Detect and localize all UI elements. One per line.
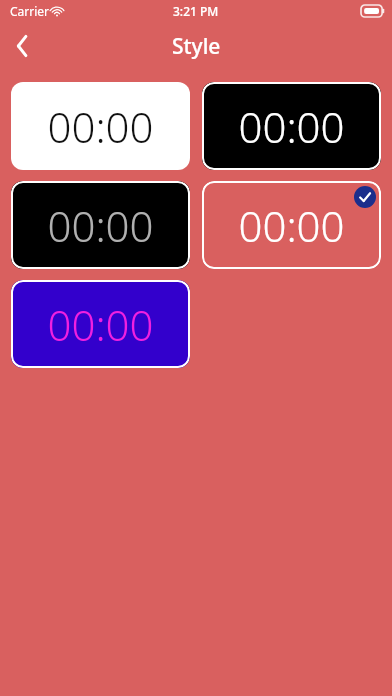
staticText: 00:00 [238,98,345,155]
button[interactable]: 00:00 [11,181,190,269]
staticText: 3:21 PM [173,3,219,19]
button[interactable]: 00:00 [202,181,381,269]
staticText: 00:00 [47,98,154,155]
button[interactable]: 00:00 [11,280,190,368]
staticText: Style [172,32,221,61]
staticText: 00:00 [47,197,154,254]
staticText: Carrier [10,3,50,19]
button[interactable]: 00:00 [202,82,381,170]
staticText: 00:00 [238,197,345,254]
button[interactable]: 00:00 [11,82,190,170]
button[interactable]: Back [0,24,44,68]
staticText: 00:00 [47,296,154,353]
